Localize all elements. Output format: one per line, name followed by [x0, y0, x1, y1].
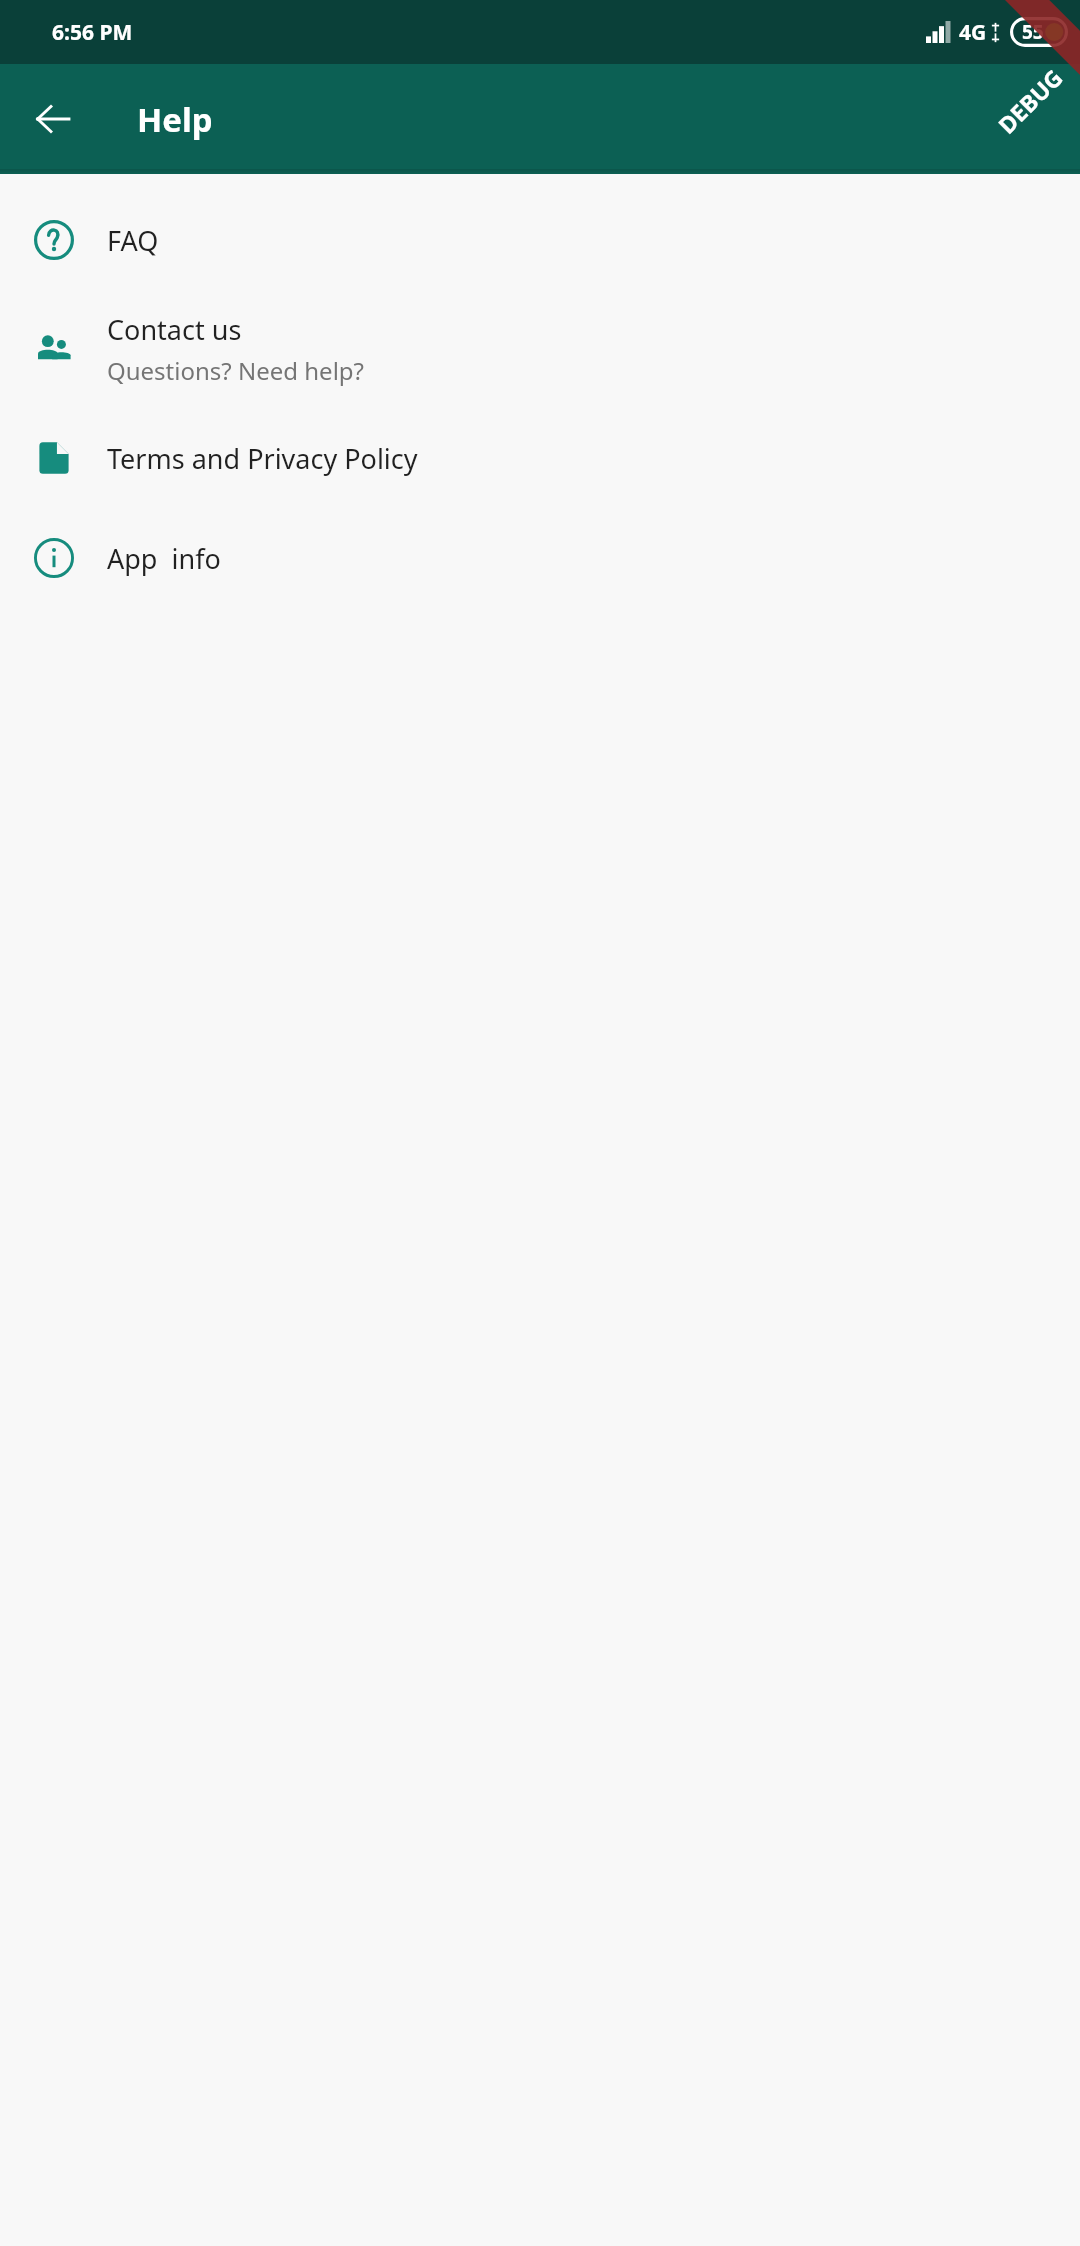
- staticText: Terms and Privacy Policy: [107, 440, 418, 477]
- staticText: Help: [137, 97, 213, 142]
- staticText: 55: [1022, 19, 1044, 45]
- staticText: App info: [107, 540, 221, 577]
- staticText: FAQ: [107, 222, 159, 259]
- staticText: 4G: [959, 18, 987, 47]
- button[interactable]: FAQ: [0, 190, 1080, 290]
- staticText: Questions? Need help?: [107, 354, 365, 387]
- button[interactable]: Contact us: [0, 290, 1080, 408]
- button[interactable]: Terms and Privacy Policy: [0, 408, 1080, 508]
- button[interactable]: Back: [20, 86, 86, 152]
- staticText: DEBUG: [991, 61, 1069, 140]
- staticText: 6:56 PM: [52, 18, 133, 47]
- button[interactable]: App info: [0, 508, 1080, 608]
- staticText: Contact us: [107, 311, 242, 348]
